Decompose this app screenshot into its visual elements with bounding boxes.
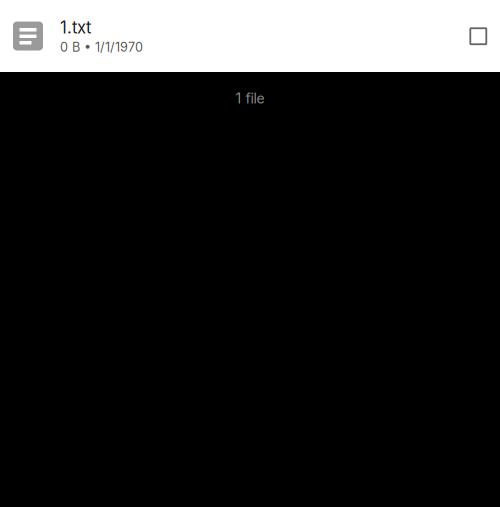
staticText: 0 B • 1/1/1970	[60, 39, 143, 55]
staticText: 1 file	[235, 90, 264, 107]
button[interactable]: Select 1.txt	[462, 20, 494, 52]
staticText: 1.txt	[60, 17, 91, 37]
button[interactable]: 1.txt	[0, 0, 500, 72]
